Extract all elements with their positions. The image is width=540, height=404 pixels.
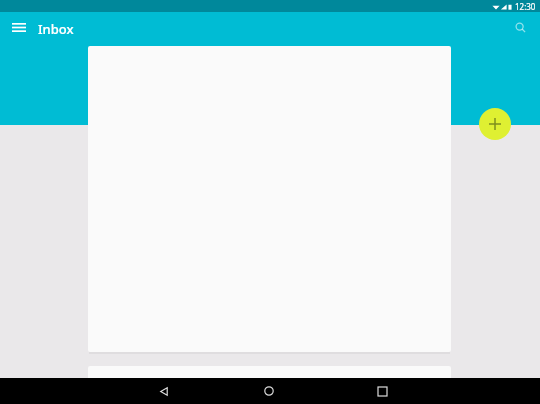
- button[interactable]: [88, 366, 451, 380]
- button[interactable]: Home: [252, 378, 286, 404]
- button[interactable]: Back: [147, 378, 181, 404]
- button[interactable]: Compose: [479, 108, 511, 140]
- button[interactable]: Recent apps: [365, 378, 399, 404]
- staticText: 12:30: [515, 1, 536, 12]
- button[interactable]: Search: [507, 14, 533, 40]
- staticText: Inbox: [38, 20, 74, 38]
- button[interactable]: Open navigation drawer: [6, 14, 32, 40]
